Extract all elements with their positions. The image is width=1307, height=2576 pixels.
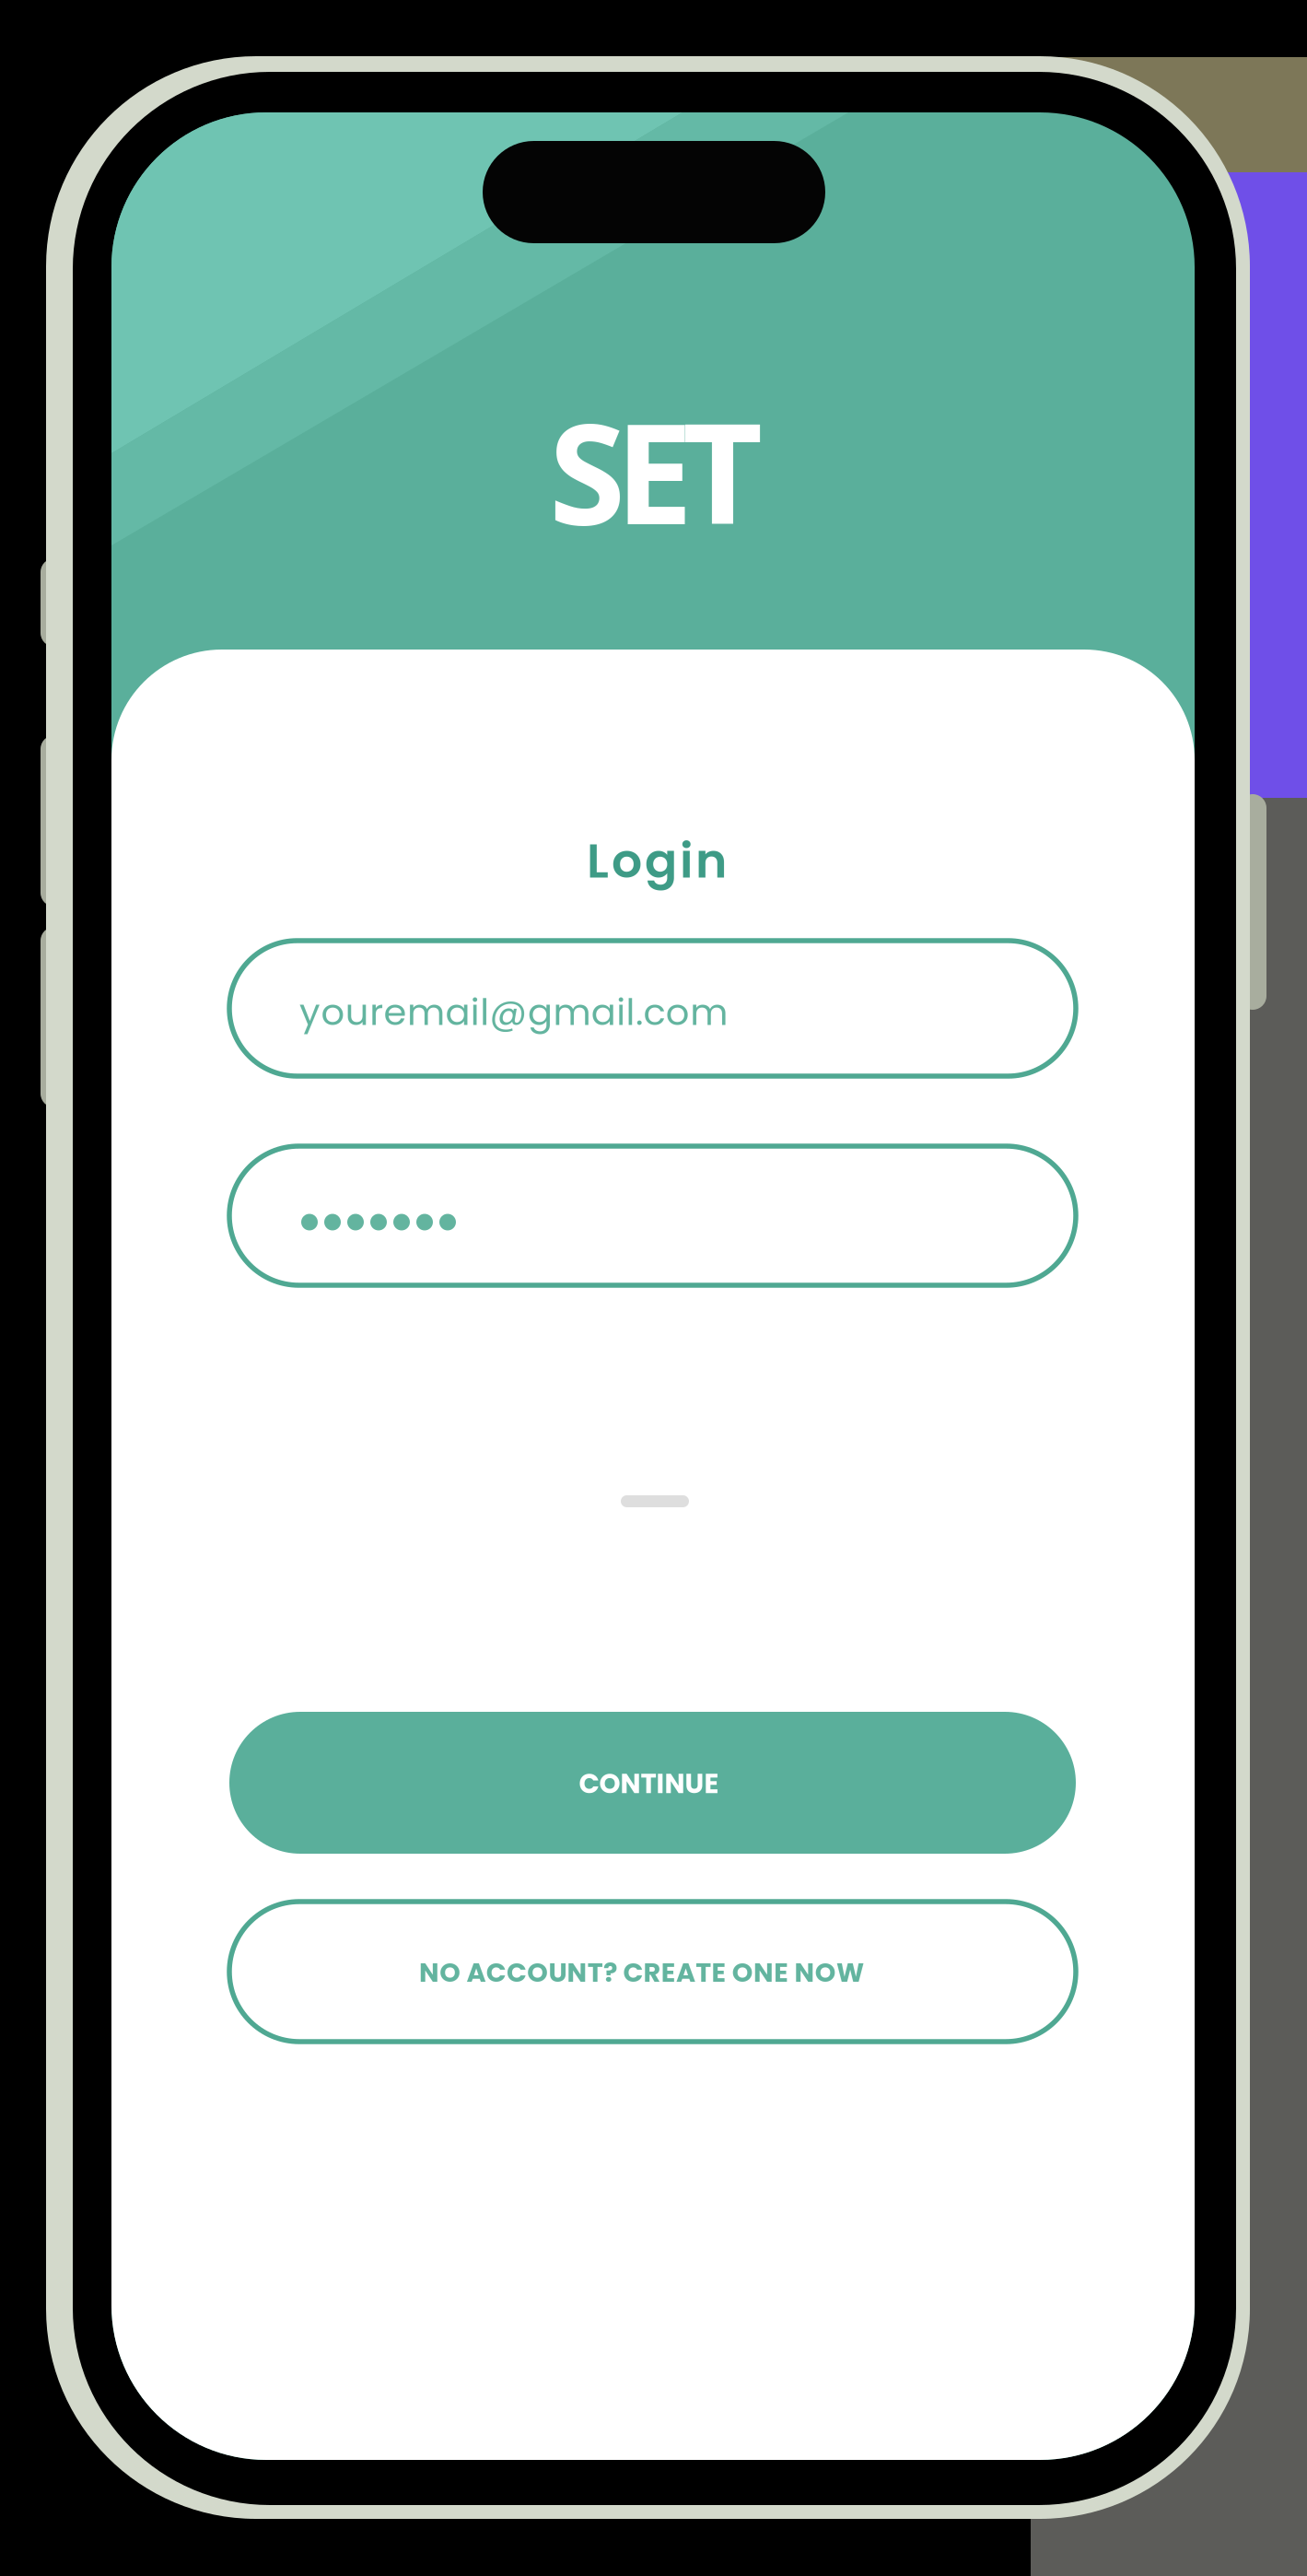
staticText: SET (549, 376, 763, 565)
staticText: youremail@gmail.com (299, 986, 728, 1038)
staticText: CONTINUE (579, 1765, 719, 1803)
staticText: Login (587, 827, 727, 894)
button[interactable] (229, 1146, 1076, 1285)
button[interactable]: CONTINUE (229, 1712, 1076, 1854)
button[interactable]: youremail@gmail.com (229, 941, 1076, 1076)
button[interactable]: NO ACCOUNT? CREATE ONE NOW (229, 1902, 1076, 2042)
staticText: NO ACCOUNT? CREATE ONE NOW (419, 1954, 864, 1991)
